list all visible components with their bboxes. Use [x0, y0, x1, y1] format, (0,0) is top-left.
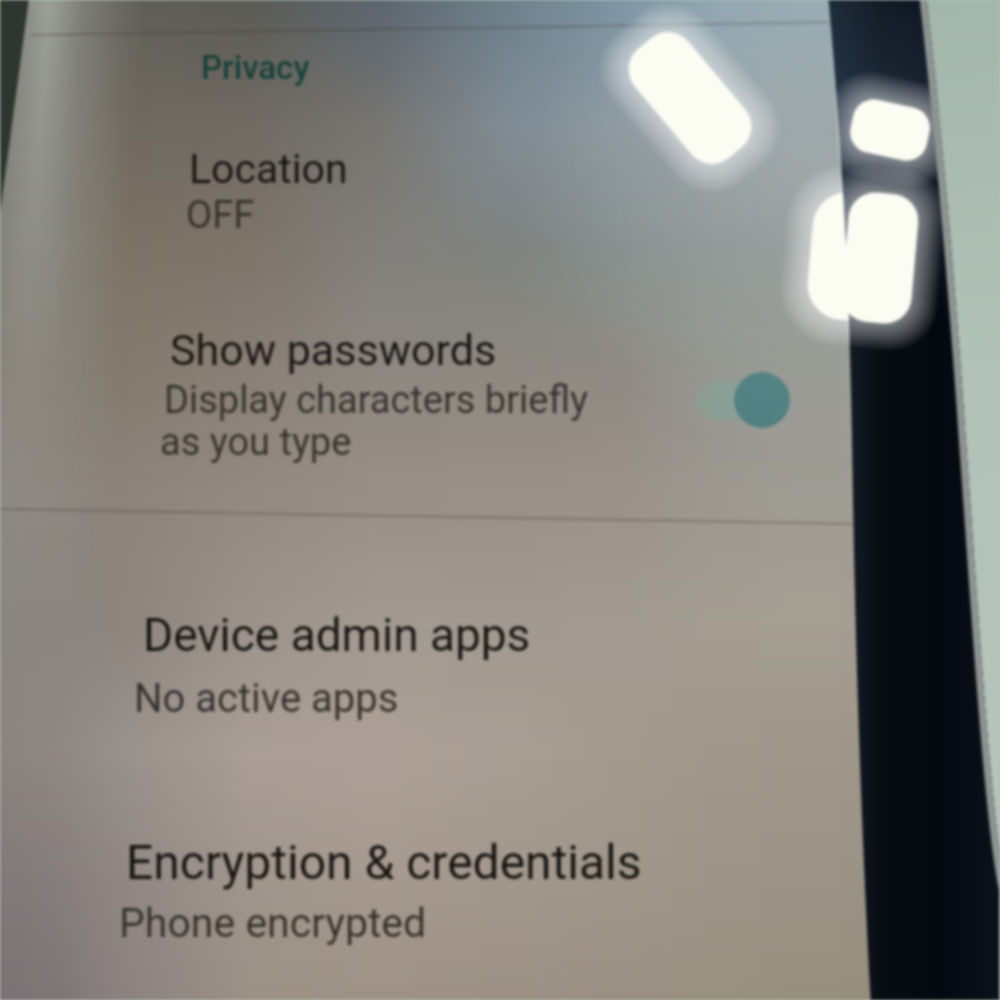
button[interactable]: Android Settings privacy screen [0, 0, 1000, 1000]
